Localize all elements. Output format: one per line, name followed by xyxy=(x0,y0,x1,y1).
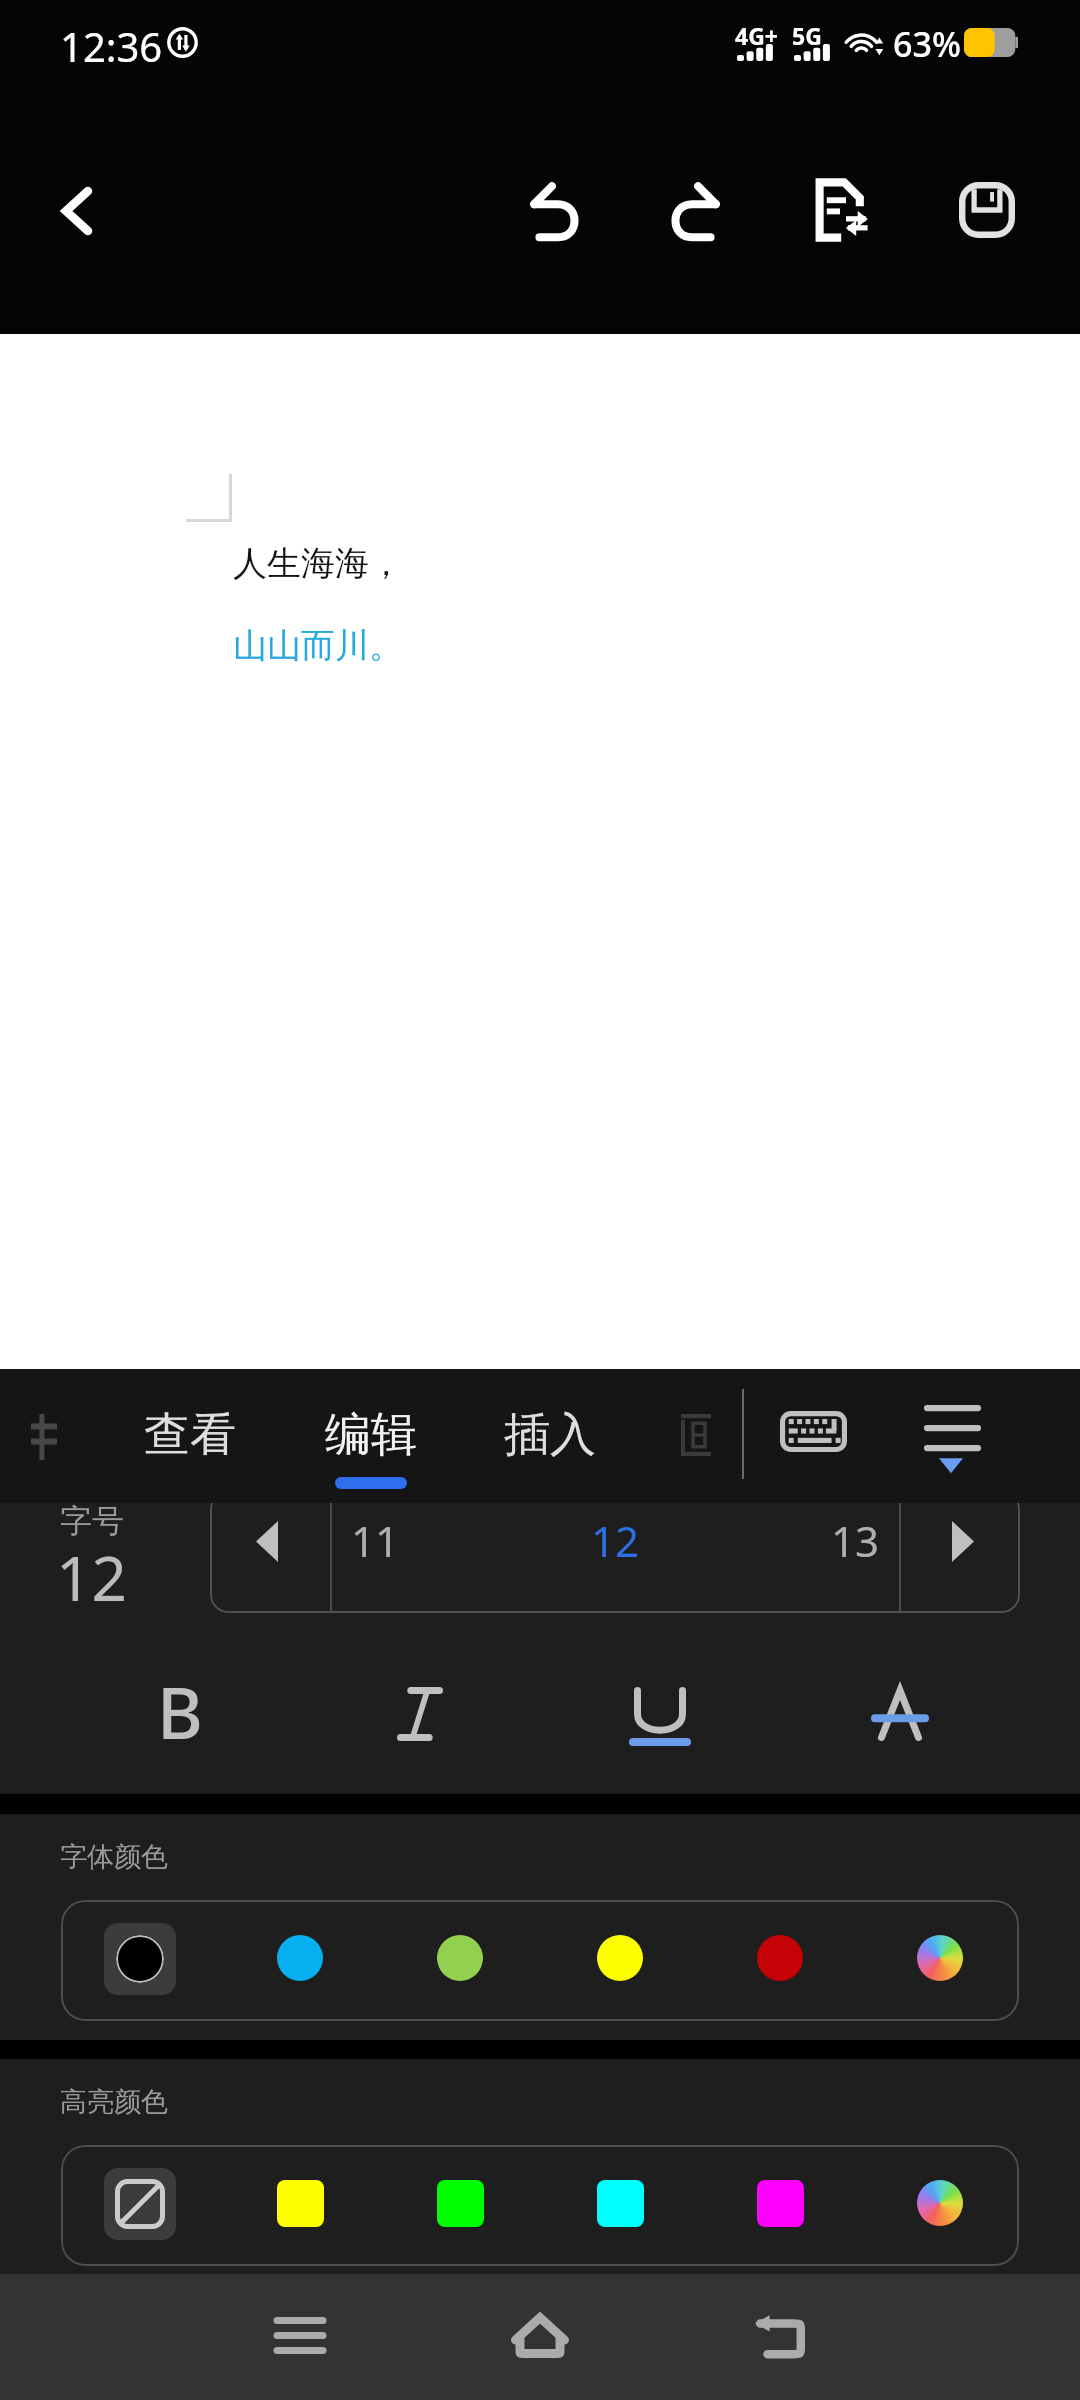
button[interactable]: Recents xyxy=(245,2280,355,2390)
button[interactable]: Back xyxy=(725,2280,835,2390)
button[interactable]: Redo xyxy=(641,155,751,265)
button[interactable]: Color 3 xyxy=(597,1935,643,1981)
staticText: 5G xyxy=(792,20,822,51)
staticText: 63% xyxy=(893,21,961,67)
button[interactable]: Increase font size xyxy=(900,1503,1020,1613)
button[interactable]: More colors xyxy=(917,1935,963,1981)
button[interactable]: Color 3 xyxy=(597,2180,644,2227)
staticText: 插入 xyxy=(504,1406,596,1464)
button[interactable]: Home xyxy=(485,2280,595,2390)
button[interactable]: Bold xyxy=(90,1644,270,1794)
staticText: 人生海海， xyxy=(233,542,403,585)
button[interactable]: Decrease font size xyxy=(210,1503,330,1613)
button[interactable]: Black xyxy=(104,1923,176,1995)
button[interactable]: Color 2 xyxy=(437,1935,483,1981)
button[interactable]: Back xyxy=(30,163,126,259)
button[interactable]: Export xyxy=(788,155,898,265)
button[interactable]: Keyboard xyxy=(760,1379,866,1493)
staticText: 11 xyxy=(351,1512,400,1569)
button[interactable]: 11 xyxy=(315,1503,435,1613)
button[interactable]: More colors xyxy=(917,2180,963,2226)
button[interactable]: Undo xyxy=(499,155,609,265)
staticText: 查看 xyxy=(144,1406,236,1464)
button[interactable]: 查看 xyxy=(118,1369,262,1503)
button[interactable]: Text color xyxy=(810,1644,990,1794)
button[interactable]: 插入 xyxy=(478,1369,622,1503)
staticText: 12 xyxy=(56,1535,127,1619)
button[interactable]: 编辑 xyxy=(299,1369,443,1503)
button[interactable]: 12 xyxy=(555,1503,675,1613)
staticText: 编辑 xyxy=(325,1406,417,1464)
staticText: B xyxy=(157,1664,203,1759)
staticText: 字号 xyxy=(60,1503,124,1541)
button[interactable]: Paragraph settings xyxy=(892,1369,1012,1503)
button[interactable]: Underline xyxy=(570,1644,750,1794)
button[interactable]: Italic xyxy=(330,1644,510,1794)
staticText: 高亮颜色 xyxy=(60,2085,168,2119)
button[interactable]: No highlight xyxy=(104,2168,176,2240)
staticText: 山山而川。 xyxy=(233,624,403,667)
button[interactable]: Color 4 xyxy=(757,1935,803,1981)
button[interactable]: Save xyxy=(932,155,1042,265)
staticText: 字体颜色 xyxy=(60,1840,168,1874)
button[interactable]: Color 1 xyxy=(277,2180,324,2227)
button[interactable]: Color 2 xyxy=(437,2180,484,2227)
button[interactable]: Color 1 xyxy=(277,1935,323,1981)
staticText: 13 xyxy=(831,1512,880,1569)
button[interactable]: Color 4 xyxy=(757,2180,804,2227)
button[interactable]: 13 xyxy=(795,1503,915,1613)
staticText: 4G+ xyxy=(735,20,778,51)
staticText: 12:36 xyxy=(60,19,163,73)
staticText: 12 xyxy=(591,1512,640,1569)
